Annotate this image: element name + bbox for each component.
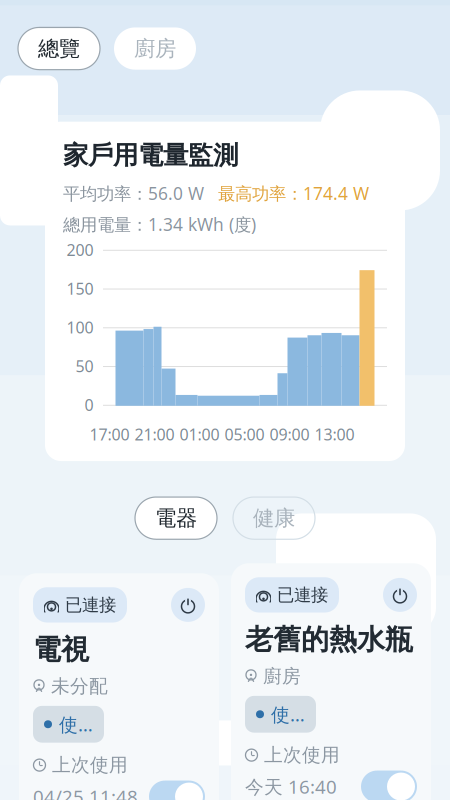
staticText: 廚房 <box>263 665 301 688</box>
button[interactable]: 廚房 <box>114 27 196 70</box>
staticText: 上次使用 <box>264 744 340 766</box>
staticText: 13:00 <box>314 424 354 445</box>
button[interactable]: Power <box>171 588 205 622</box>
staticText: 09:00 <box>269 424 309 445</box>
button[interactable]: Power <box>383 578 417 612</box>
staticText: 健康 <box>253 505 295 531</box>
staticText: 已連接 <box>277 584 328 605</box>
button[interactable]: Toggle 老舊的熱水瓶 <box>361 771 417 800</box>
staticText: 上次使用 <box>52 754 128 776</box>
staticText: 200 <box>66 239 93 260</box>
staticText: 50 <box>75 355 93 377</box>
staticText: 05:00 <box>224 424 264 445</box>
staticText: 使… <box>59 712 93 737</box>
button[interactable]: 總覽 <box>18 27 100 70</box>
staticText: 使… <box>271 702 305 727</box>
button[interactable]: Toggle 電視 <box>149 781 205 800</box>
button[interactable]: 健康 <box>233 497 315 539</box>
staticText: 150 <box>66 278 93 299</box>
staticText: 最高功率：174.4 W <box>218 182 369 205</box>
staticText: 老舊的熱水瓶 <box>245 622 413 657</box>
staticText: 0 <box>84 394 93 415</box>
staticText: 今天 16:40 <box>245 774 337 799</box>
staticText: 家戶用電量監測 <box>63 140 238 171</box>
staticText: 平均功率：56.0 W <box>63 182 204 205</box>
staticText: 100 <box>66 317 93 338</box>
staticText: 未分配 <box>51 675 108 698</box>
staticText: 21:00 <box>134 424 174 445</box>
button[interactable]: 電器 <box>135 497 217 539</box>
staticText: 電視 <box>33 632 89 667</box>
staticText: 廚房 <box>134 35 176 62</box>
staticText: 電器 <box>155 505 197 531</box>
staticText: 17:00 <box>89 424 129 445</box>
staticText: 總覽 <box>38 35 80 62</box>
staticText: 總用電量：1.34 kWh (度) <box>63 213 256 236</box>
staticText: 已連接 <box>65 594 116 615</box>
staticText: 04/25 11:48 <box>33 784 138 800</box>
staticText: 01:00 <box>179 424 219 445</box>
